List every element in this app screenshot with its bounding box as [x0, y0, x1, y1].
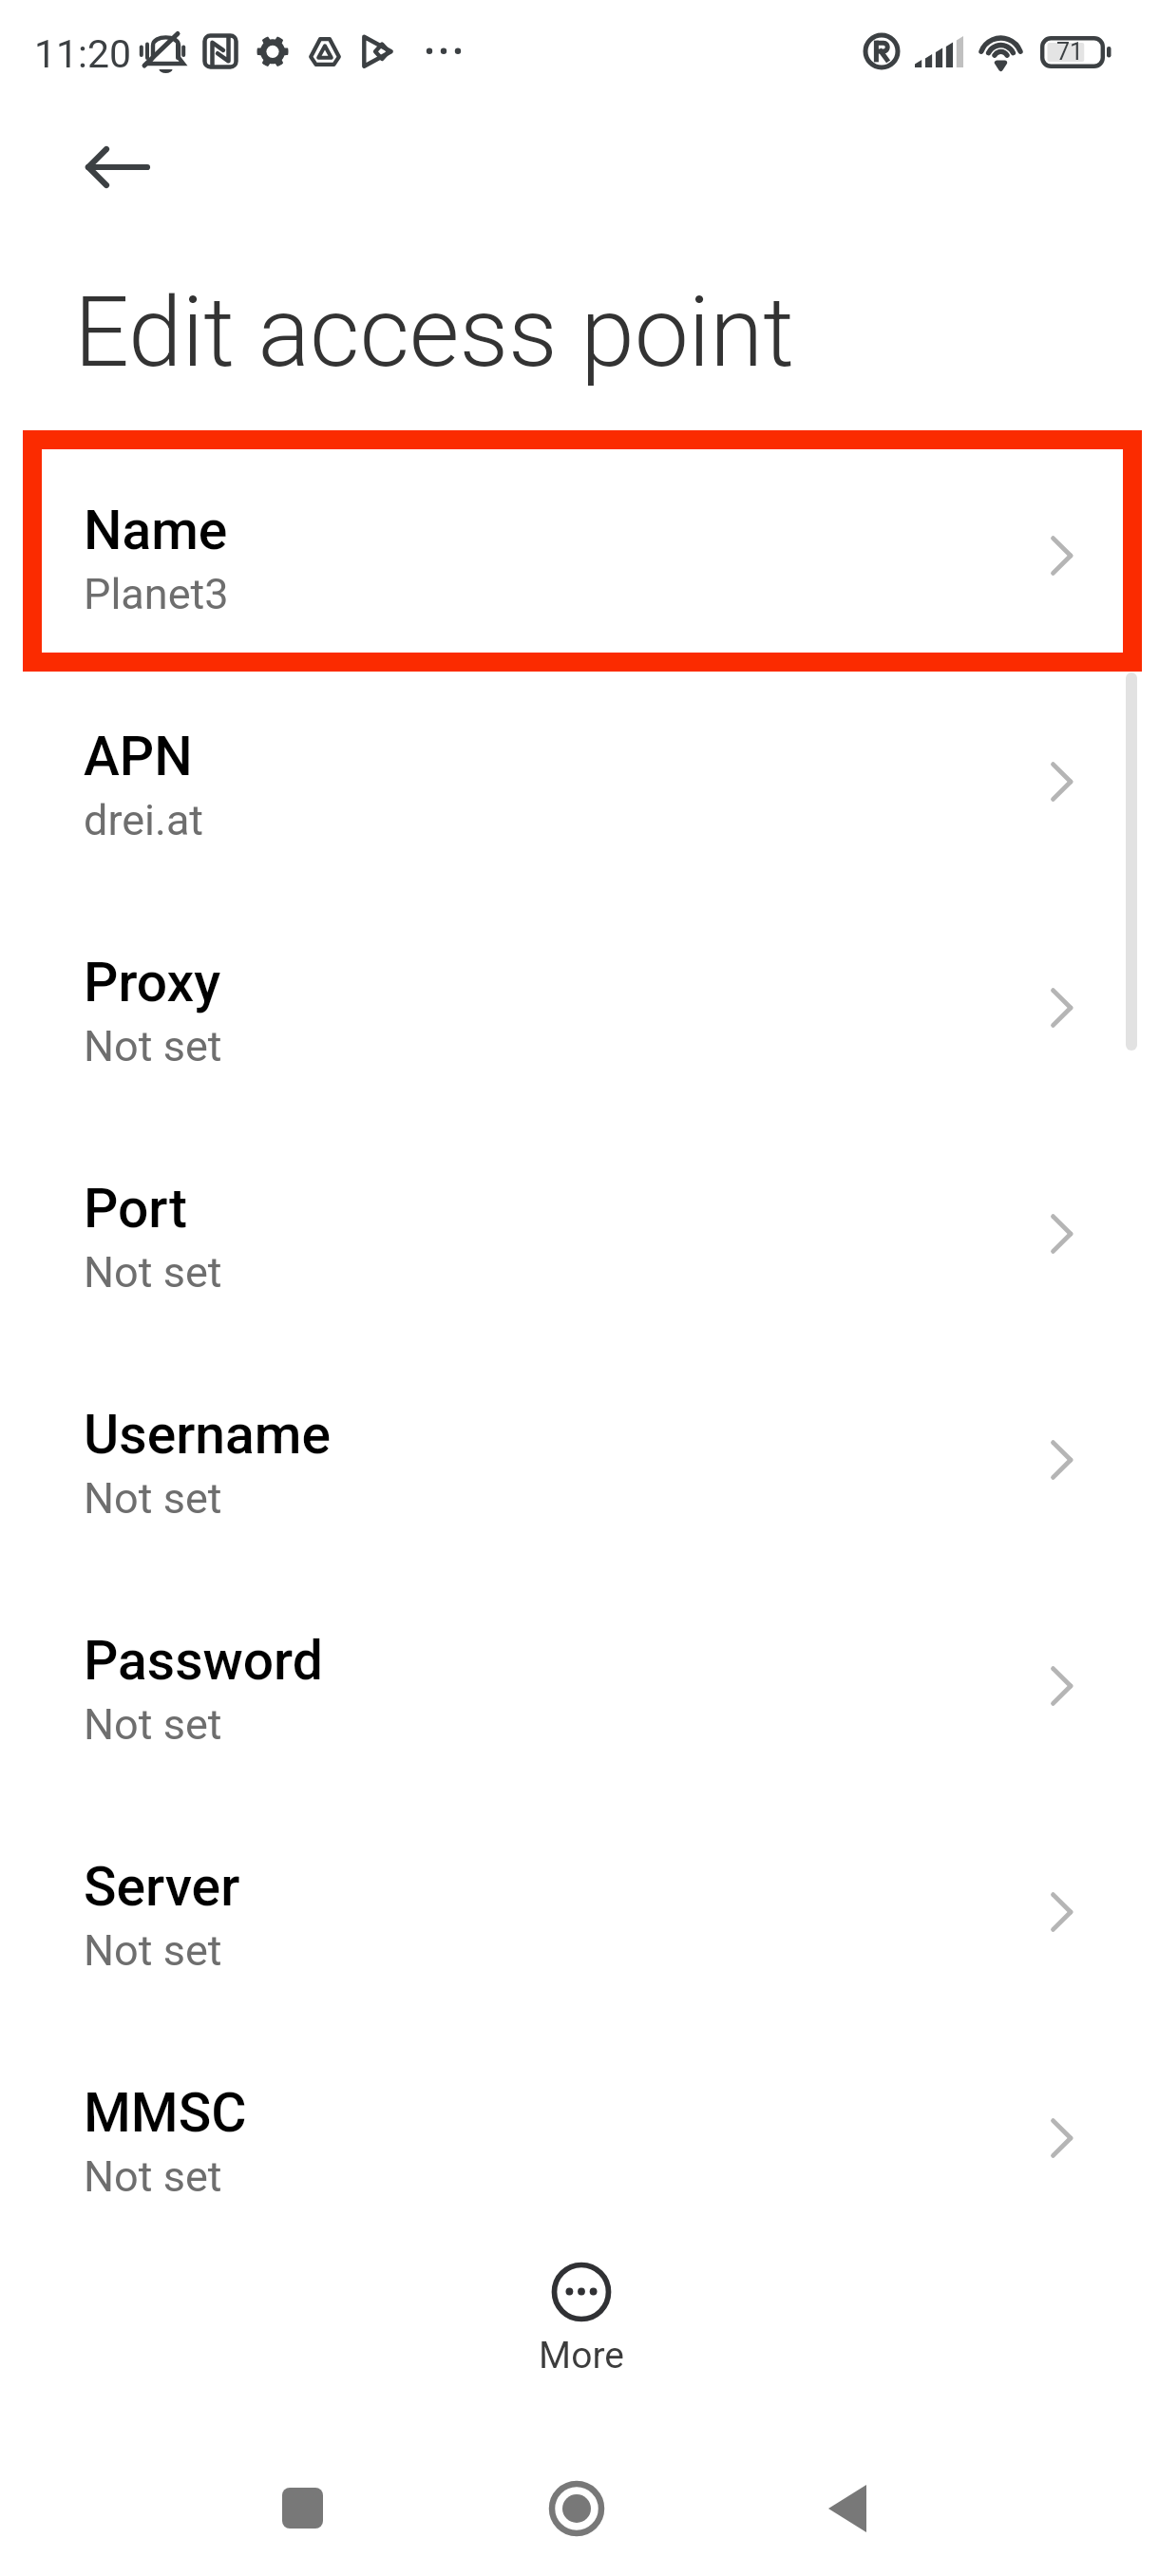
button[interactable]: APN	[0, 679, 1159, 905]
button[interactable]: Password	[0, 1583, 1159, 1809]
staticText: Not set	[84, 1021, 222, 1071]
button[interactable]: Port	[0, 1131, 1159, 1357]
staticText: Not set	[84, 1247, 222, 1297]
staticText: Password	[84, 1629, 323, 1693]
button[interactable]: Username	[0, 1357, 1159, 1583]
staticText: Proxy	[84, 951, 221, 1014]
staticText: Server	[84, 1855, 240, 1919]
staticText: Not set	[84, 1699, 222, 1750]
staticText: drei.at	[84, 795, 204, 845]
button[interactable]: Home	[520, 2452, 634, 2566]
staticText: Not set	[84, 1925, 222, 1976]
staticText: 11:20	[34, 31, 132, 77]
staticText: Not set	[84, 2151, 222, 2202]
staticText: Not set	[84, 1473, 222, 1524]
staticText: APN	[84, 725, 193, 788]
staticText: Username	[84, 1403, 331, 1467]
button[interactable]: Back	[40, 122, 135, 213]
staticText: 71	[1056, 38, 1084, 66]
button[interactable]: Name	[0, 453, 1159, 679]
button[interactable]: Back	[790, 2452, 904, 2566]
staticText: Port	[84, 1177, 187, 1241]
staticText: Edit access point	[74, 275, 794, 389]
button[interactable]: Server	[0, 1809, 1159, 2036]
staticText: Planet3	[84, 569, 229, 619]
staticText: Name	[84, 499, 228, 562]
button[interactable]: Recent apps	[245, 2451, 359, 2565]
button[interactable]: Proxy	[0, 905, 1159, 1131]
button[interactable]: More	[477, 2258, 686, 2395]
staticText: More	[539, 2334, 624, 2377]
button[interactable]: MMSC	[0, 2036, 1159, 2262]
staticText: MMSC	[84, 2081, 247, 2145]
